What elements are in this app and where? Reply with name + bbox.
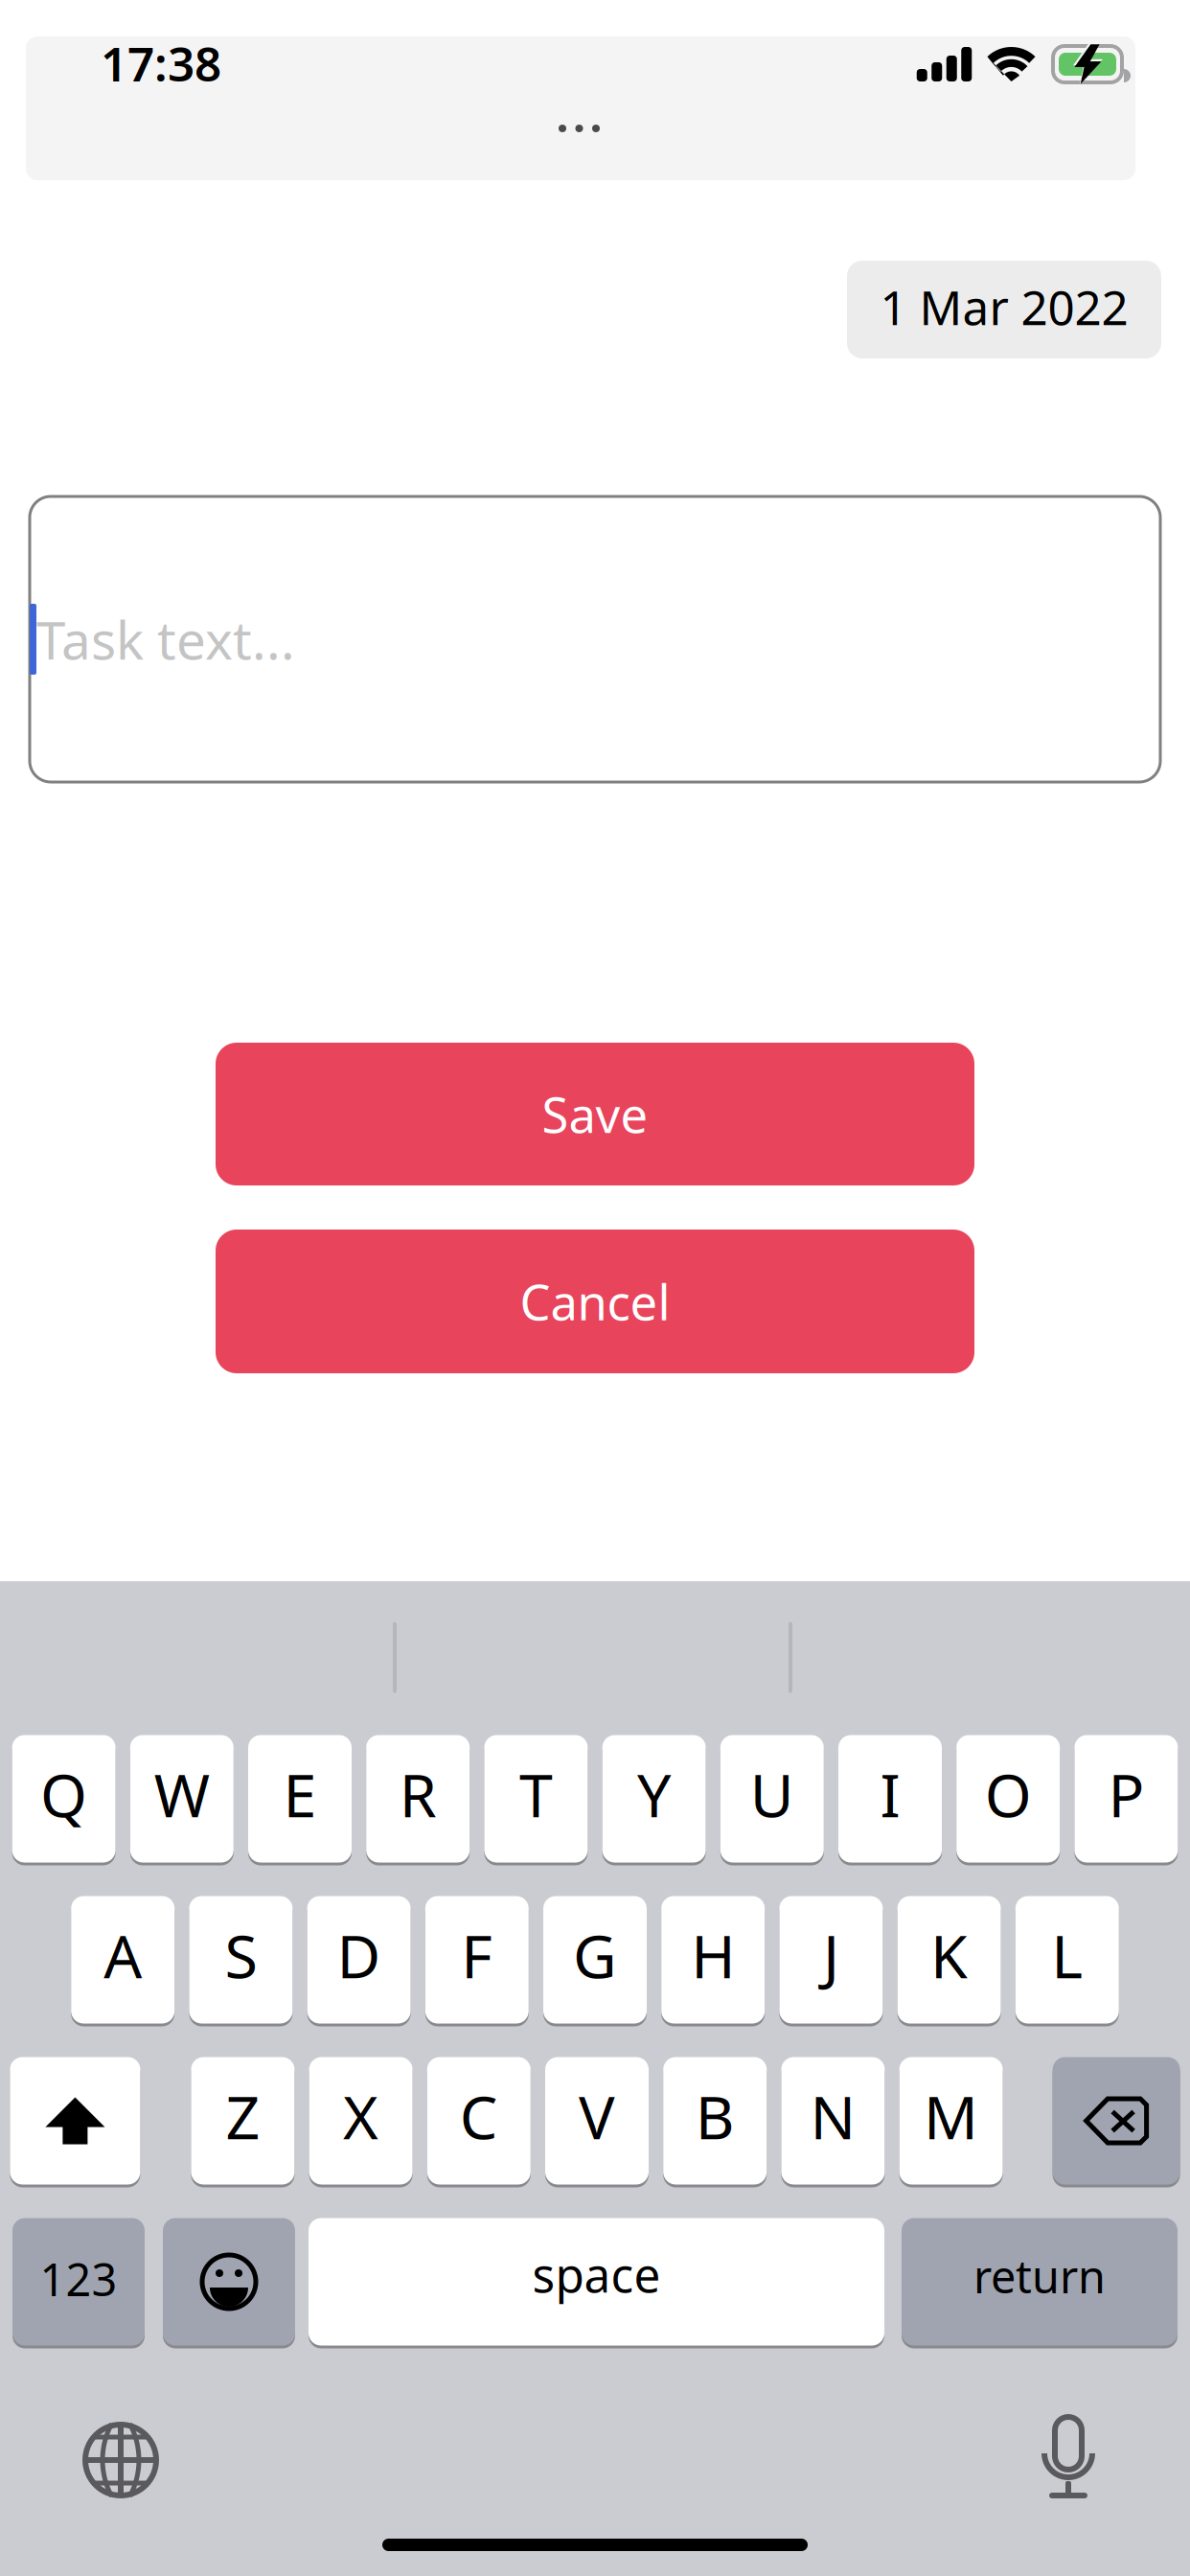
button[interactable]: A: [71, 1895, 175, 2025]
button[interactable]: Emoji: [163, 2217, 295, 2347]
staticText: E: [283, 1754, 317, 1834]
staticText: B: [695, 2076, 735, 2156]
button[interactable]: Dictate: [1041, 2417, 1095, 2498]
staticText: 17:38: [101, 32, 221, 94]
staticText: Save: [542, 1082, 648, 1146]
staticText: L: [1051, 1915, 1083, 1995]
button[interactable]: Y: [602, 1734, 706, 1864]
staticText: P: [1108, 1754, 1144, 1834]
button[interactable]: C: [427, 2056, 531, 2186]
staticText: H: [691, 1915, 735, 1995]
button[interactable]: Q: [12, 1734, 116, 1864]
staticText: C: [460, 2076, 498, 2156]
button[interactable]: S: [189, 1895, 293, 2025]
button[interactable]: F: [425, 1895, 529, 2025]
button[interactable]: O: [956, 1734, 1060, 1864]
staticText: space: [532, 2243, 661, 2305]
button[interactable]: V: [545, 2056, 649, 2186]
button[interactable]: R: [366, 1734, 470, 1864]
button[interactable]: D: [307, 1895, 411, 2025]
button[interactable]: U: [720, 1734, 824, 1864]
staticText: Y: [637, 1754, 671, 1834]
staticText: G: [573, 1915, 617, 1995]
button[interactable]: I: [838, 1734, 942, 1864]
staticText: 1 Mar 2022: [880, 275, 1128, 338]
staticText: T: [519, 1754, 553, 1834]
button[interactable]: More: [559, 125, 600, 132]
staticText: A: [104, 1915, 142, 1995]
staticText: S: [225, 1915, 257, 1995]
staticText: X: [343, 2076, 379, 2156]
button[interactable]: L: [1015, 1895, 1119, 2025]
staticText: 123: [40, 2249, 117, 2309]
button[interactable]: 123: [12, 2217, 145, 2347]
button[interactable]: Cancel: [216, 1230, 974, 1373]
button[interactable]: K: [897, 1895, 1001, 2025]
staticText: F: [461, 1915, 493, 1995]
staticText: U: [750, 1754, 794, 1834]
staticText: R: [399, 1754, 437, 1834]
staticText: W: [154, 1754, 210, 1834]
staticText: J: [823, 1915, 839, 1995]
button[interactable]: return: [902, 2217, 1178, 2347]
button[interactable]: Shift: [10, 2056, 140, 2186]
button[interactable]: T: [484, 1734, 588, 1864]
staticText: V: [579, 2076, 615, 2156]
button[interactable]: G: [543, 1895, 647, 2025]
button[interactable]: N: [781, 2056, 885, 2186]
staticText: Z: [226, 2076, 260, 2156]
staticText: M: [924, 2076, 978, 2156]
button[interactable]: B: [663, 2056, 767, 2186]
button[interactable]: H: [661, 1895, 765, 2025]
staticText: Q: [40, 1754, 87, 1834]
button[interactable]: M: [899, 2056, 1003, 2186]
button[interactable]: Delete: [1053, 2056, 1180, 2186]
button[interactable]: space: [309, 2217, 884, 2347]
button[interactable]: X: [309, 2056, 413, 2186]
button[interactable]: Z: [191, 2056, 295, 2186]
button[interactable]: Task text...: [30, 496, 1160, 782]
staticText: N: [810, 2076, 856, 2156]
button[interactable]: E: [248, 1734, 352, 1864]
staticText: K: [930, 1915, 968, 1995]
staticText: Cancel: [520, 1269, 670, 1334]
button[interactable]: P: [1074, 1734, 1178, 1864]
staticText: O: [985, 1754, 1032, 1834]
staticText: I: [880, 1754, 900, 1834]
button[interactable]: Next keyboard: [82, 2422, 159, 2498]
staticText: return: [973, 2246, 1106, 2306]
button[interactable]: 1 Mar 2022: [847, 261, 1161, 358]
staticText: D: [337, 1915, 381, 1995]
button[interactable]: Save: [216, 1043, 974, 1185]
button[interactable]: W: [130, 1734, 234, 1864]
staticText: Task text...: [36, 604, 295, 674]
button[interactable]: J: [779, 1895, 883, 2025]
